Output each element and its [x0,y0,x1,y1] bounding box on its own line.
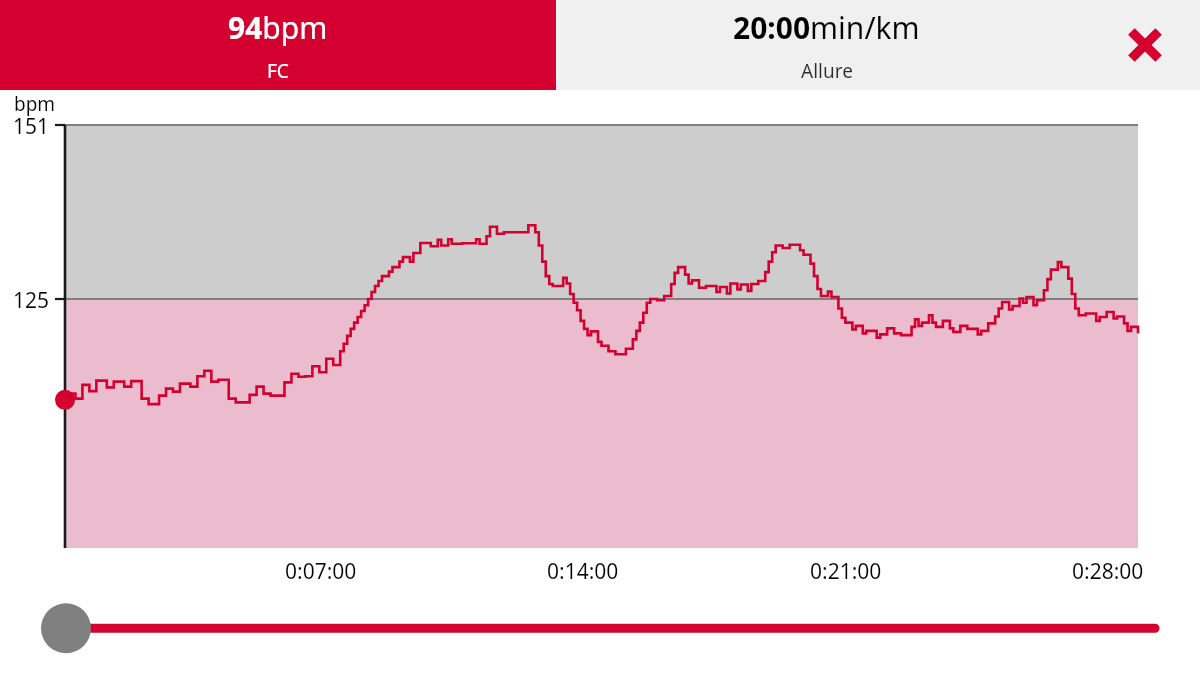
staticText: FC [267,58,289,84]
staticText: 0:07:00 [285,557,357,586]
staticText: 20:00min/km [733,7,920,48]
staticText: bpm [14,91,56,117]
staticText: 94bpm [228,7,328,48]
staticText: 125 [13,286,50,315]
staticText: 0:14:00 [547,557,619,586]
button[interactable]: Close [1111,11,1179,79]
button[interactable] [0,590,1200,675]
staticText: 0:28:00 [1072,557,1144,586]
staticText: Allure [801,58,853,84]
button[interactable]: 20:00min/km [556,0,1096,90]
staticText: 151 [13,112,50,141]
staticText: 0:21:00 [810,557,882,586]
button[interactable]: 94bpm [0,0,556,90]
